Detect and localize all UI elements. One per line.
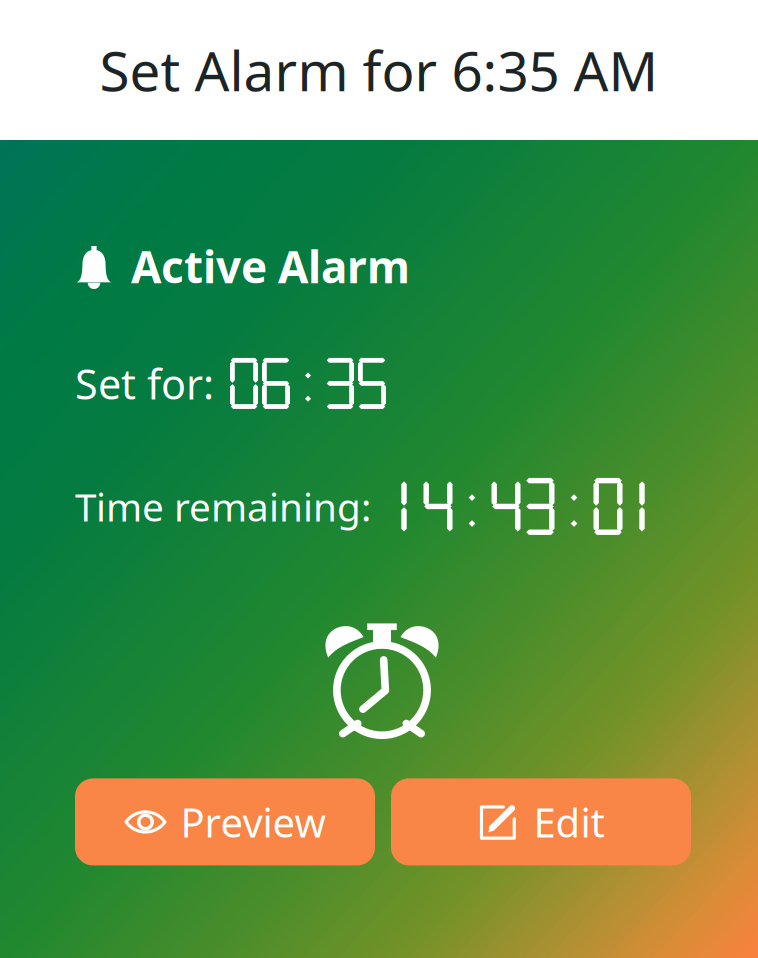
- staticText: Active Alarm: [131, 237, 410, 295]
- staticText: Edit: [533, 795, 604, 848]
- button[interactable]: Edit: [391, 778, 691, 865]
- staticText: Preview: [180, 795, 325, 848]
- staticText: Time remaining:: [75, 481, 371, 532]
- button[interactable]: Preview: [75, 778, 375, 865]
- staticText: Set Alarm for 6:35 AM: [99, 34, 658, 106]
- staticText: Set for:: [75, 356, 214, 411]
